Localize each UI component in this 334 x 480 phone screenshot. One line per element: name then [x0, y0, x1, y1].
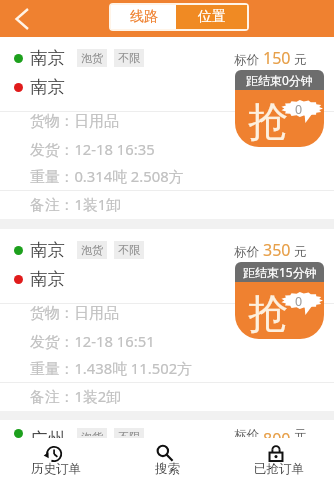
staticText: 元 [294, 244, 307, 260]
staticText: 距结束0分钟 [246, 72, 313, 88]
staticText: 标价 [234, 244, 259, 260]
staticText: 发货：12-18 16:35 [30, 139, 155, 159]
staticText: 不限 [118, 430, 140, 436]
staticText: 标价 [234, 52, 259, 68]
button[interactable]: 搜索 [112, 438, 223, 480]
button[interactable]: 线路 [111, 5, 176, 29]
staticText: 0 [295, 101, 303, 118]
staticText: 不限 [118, 243, 140, 257]
staticText: 不限 [118, 51, 140, 65]
staticText: 货物：日用品 [30, 112, 119, 131]
staticText: 150 [263, 47, 291, 69]
staticText: 搜索 [155, 461, 180, 477]
staticText: 备注：1装1卸 [30, 194, 121, 214]
staticText: 元 [294, 427, 307, 437]
staticText: 标价 [234, 427, 259, 437]
button[interactable]: 历史订单 [0, 438, 112, 480]
staticText: 已抢订单 [254, 461, 304, 477]
staticText: 重量：0.314吨 2.508方 [30, 166, 184, 186]
button[interactable]: Grab order [235, 70, 324, 147]
button[interactable]: 已抢订单 [223, 438, 334, 480]
staticText: 发货：12-18 16:51 [30, 331, 155, 351]
staticText: 距结束15分钟 [243, 264, 317, 280]
staticText: 泡货 [81, 51, 103, 65]
staticText: 南京 [30, 268, 65, 290]
staticText: 350 [263, 239, 291, 261]
staticText: 0 [295, 293, 303, 310]
staticText: 泡货 [81, 430, 103, 436]
staticText: 线路 [130, 8, 158, 26]
staticText: 广州 [30, 428, 65, 438]
staticText: 重量：1.438吨 11.502方 [30, 358, 192, 378]
button[interactable]: Back [6, 3, 38, 35]
staticText: 南京 [30, 47, 65, 69]
staticText: 南京 [30, 239, 65, 261]
staticText: 抢 [248, 288, 288, 338]
staticText: 位置 [198, 8, 226, 26]
staticText: 抢 [248, 96, 288, 146]
staticText: 800 [263, 428, 291, 438]
staticText: 泡货 [81, 243, 103, 257]
staticText: 历史订单 [31, 461, 81, 477]
staticText: 备注：1装2卸 [30, 386, 121, 406]
button[interactable]: Grab order [235, 262, 324, 339]
staticText: 南京 [30, 76, 65, 98]
staticText: 货物：日用品 [30, 304, 119, 323]
button[interactable]: 位置 [176, 5, 247, 29]
staticText: 元 [294, 52, 307, 68]
